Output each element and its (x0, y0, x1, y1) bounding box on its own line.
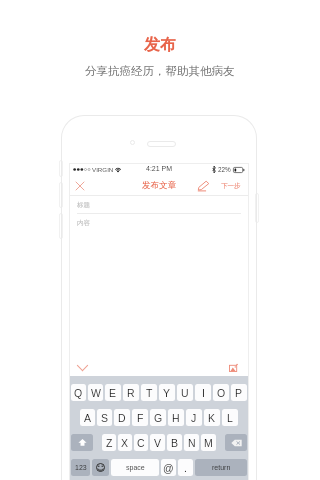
button[interactable]: U (177, 384, 193, 401)
button[interactable]: 下一步 (220, 180, 242, 192)
staticText: M (204, 437, 213, 449)
staticText: . (184, 462, 187, 474)
button[interactable]: C (134, 434, 148, 451)
staticText: O (217, 387, 226, 399)
staticText: G (154, 412, 163, 424)
button[interactable]: J (186, 409, 202, 426)
button[interactable]: N (184, 434, 199, 451)
button[interactable]: Insert image (225, 360, 241, 376)
button[interactable]: D (114, 409, 130, 426)
button[interactable]: R (123, 384, 139, 401)
staticText: 分享抗癌经历，帮助其他病友 (85, 64, 235, 78)
button[interactable]: Backspace (225, 434, 247, 451)
button[interactable]: 123 (71, 459, 90, 476)
button[interactable]: Q (71, 384, 86, 401)
staticText: Z (106, 437, 113, 449)
staticText: K (208, 412, 216, 424)
button[interactable]: P (231, 384, 247, 401)
button[interactable]: Y (159, 384, 175, 401)
button[interactable]: T (141, 384, 157, 401)
button[interactable]: @ (161, 459, 176, 476)
button[interactable]: Emoji keyboard (92, 459, 109, 476)
staticText: D (118, 412, 126, 424)
button[interactable]: O (213, 384, 229, 401)
button[interactable]: B (167, 434, 182, 451)
staticText: space (126, 464, 145, 472)
staticText: A (84, 412, 92, 424)
button[interactable]: S (97, 409, 112, 426)
staticText: 123 (75, 464, 87, 472)
button[interactable]: M (201, 434, 216, 451)
button[interactable]: W (88, 384, 103, 401)
staticText: 标题 (77, 201, 90, 209)
button[interactable]: G (150, 409, 166, 426)
button[interactable]: Collapse keyboard (74, 360, 90, 376)
button[interactable]: E (105, 384, 121, 401)
button[interactable]: Shift (71, 434, 93, 451)
staticText: 发布文章 (142, 180, 176, 191)
button[interactable]: space (111, 459, 159, 476)
staticText: U (181, 387, 189, 399)
staticText: 4:21 PM (146, 165, 173, 173)
button[interactable]: F (132, 409, 148, 426)
button[interactable]: K (204, 409, 220, 426)
button[interactable]: 标题 (77, 198, 241, 211)
button[interactable]: 内容 (77, 216, 241, 229)
staticText: N (188, 437, 196, 449)
staticText: R (127, 387, 135, 399)
staticText: B (171, 437, 179, 449)
staticText: W (91, 387, 101, 399)
button[interactable]: Z (102, 434, 116, 451)
button[interactable]: A (80, 409, 95, 426)
staticText: L (227, 412, 233, 424)
staticText: E (109, 387, 117, 399)
staticText: return (212, 464, 231, 472)
staticText: S (101, 412, 109, 424)
staticText: @ (163, 462, 174, 474)
staticText: 内容 (77, 219, 90, 227)
staticText: F (137, 412, 144, 424)
staticText: X (121, 437, 129, 449)
staticText: T (146, 387, 153, 399)
button[interactable]: V (150, 434, 165, 451)
staticText: P (235, 387, 243, 399)
staticText: 22% (218, 166, 231, 173)
button[interactable]: . (178, 459, 193, 476)
staticText: H (172, 412, 180, 424)
staticText: Q (74, 387, 83, 399)
button[interactable]: Edit draft (196, 179, 210, 193)
staticText: 发布 (144, 35, 176, 55)
staticText: C (137, 437, 145, 449)
button[interactable]: Close (71, 177, 88, 194)
button[interactable]: X (118, 434, 132, 451)
staticText: VIRGIN (92, 166, 114, 173)
button[interactable]: L (222, 409, 238, 426)
staticText: V (154, 437, 162, 449)
staticText: I (202, 387, 205, 399)
staticText: 下一步 (221, 182, 241, 190)
button[interactable]: I (195, 384, 211, 401)
button[interactable]: H (168, 409, 184, 426)
staticText: J (191, 412, 197, 424)
button[interactable]: return (195, 459, 247, 476)
staticText: Y (163, 387, 171, 399)
